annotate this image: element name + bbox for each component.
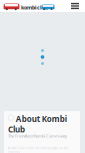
button[interactable]: Menu (68, 0, 82, 12)
staticText: About Kombi (16, 114, 67, 124)
staticText: Club (8, 124, 25, 135)
staticText: kombiclub (21, 4, 48, 11)
staticText: The Friendliest Kombi Community (8, 133, 67, 139)
staticText: Kombi Club is the friendliest place on t… (8, 146, 69, 153)
button[interactable]: Kombi Club home (3, 0, 56, 12)
